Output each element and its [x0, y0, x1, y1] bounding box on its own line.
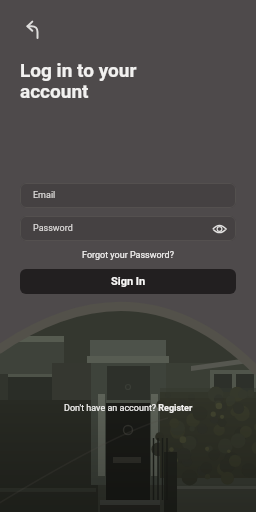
staticText: Forgot your Password? [82, 250, 174, 261]
staticText: Log in to your account [20, 59, 137, 103]
staticText: Sign In [111, 275, 146, 288]
button[interactable]: Password [20, 216, 236, 241]
button[interactable]: Don't have an account? Register [20, 403, 236, 414]
button[interactable]: Email [20, 183, 236, 208]
staticText: Email [33, 190, 56, 201]
button[interactable]: Forgot your Password? [20, 250, 236, 261]
button[interactable]: Sign In [20, 269, 236, 294]
staticText: Password [33, 223, 73, 234]
button[interactable] [212, 223, 227, 235]
button[interactable] [20, 16, 50, 46]
staticText: Don't have an account? Register [64, 403, 193, 414]
